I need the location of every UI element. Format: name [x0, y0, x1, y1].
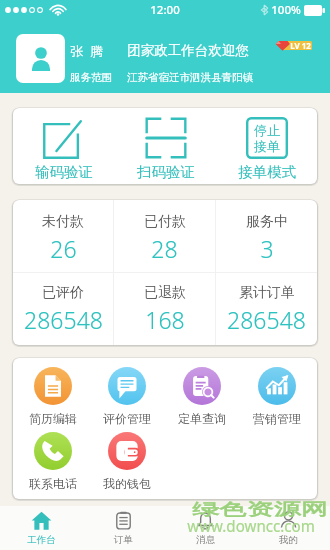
button[interactable]: 我的: [247, 506, 330, 550]
button[interactable]: 工作台: [0, 506, 82, 550]
staticText: 团家政工作台欢迎您: [127, 42, 249, 59]
staticText: 接单模式: [238, 163, 296, 181]
staticText: 联系电话: [29, 476, 77, 491]
button[interactable]: 已评价: [13, 273, 113, 345]
staticText: 已付款: [144, 213, 186, 231]
staticText: 接单: [254, 138, 280, 154]
staticText: 服务中: [246, 213, 288, 231]
staticText: www.downcc.com: [187, 514, 315, 537]
staticText: 服务范围: [70, 71, 112, 84]
staticText: 简历编辑: [29, 411, 77, 426]
button[interactable]: 订单: [82, 506, 164, 550]
button[interactable]: 联系电话: [16, 432, 90, 491]
staticText: 168: [145, 304, 185, 335]
staticText: 停止: [254, 122, 280, 138]
staticText: 12:00: [150, 2, 180, 18]
staticText: 定单查询: [178, 411, 226, 426]
button[interactable]: 累计订单: [216, 273, 317, 345]
button[interactable]: 消息: [164, 506, 247, 550]
staticText: 扫码验证: [137, 163, 195, 181]
staticText: 累计订单: [239, 284, 295, 302]
staticText: 未付款: [42, 213, 84, 231]
staticText: 286548: [24, 304, 103, 335]
staticText: 28: [151, 233, 178, 264]
staticText: 评价管理: [103, 411, 151, 426]
staticText: 订单: [114, 534, 133, 546]
staticText: 26: [50, 233, 77, 264]
button[interactable]: Profile avatar: [16, 34, 65, 83]
staticText: 100%: [271, 2, 301, 18]
staticText: 输码验证: [35, 163, 93, 181]
staticText: 286548: [227, 304, 306, 335]
button[interactable]: 评价管理: [90, 367, 164, 426]
staticText: 张 腾: [70, 42, 103, 60]
button[interactable]: 已退款: [114, 273, 215, 345]
button[interactable]: 我的钱包: [90, 432, 164, 491]
button[interactable]: 扫码验证: [115, 108, 216, 184]
staticText: 3: [260, 233, 274, 264]
staticText: 我的: [279, 534, 298, 546]
button[interactable]: 输码验证: [13, 108, 115, 184]
button[interactable]: Level 12: [281, 41, 312, 50]
staticText: 工作台: [27, 534, 56, 546]
button[interactable]: 已付款: [114, 200, 215, 272]
staticText: 江苏省宿迁市泗洪县青阳镇: [127, 71, 253, 84]
button[interactable]: 未付款: [13, 200, 113, 272]
button[interactable]: 营销管理: [239, 367, 314, 426]
staticText: 营销管理: [253, 411, 301, 426]
staticText: LV 12: [290, 41, 311, 49]
button[interactable]: 简历编辑: [16, 367, 90, 426]
staticText: 我的钱包: [103, 476, 151, 491]
staticText: 已评价: [42, 284, 84, 302]
button[interactable]: 停止: [216, 108, 317, 184]
button[interactable]: 服务中: [216, 200, 317, 272]
button[interactable]: 定单查询: [164, 367, 239, 426]
staticText: 消息: [196, 534, 215, 546]
staticText: 绿色资源网: [192, 499, 328, 520]
staticText: 已退款: [144, 284, 186, 302]
